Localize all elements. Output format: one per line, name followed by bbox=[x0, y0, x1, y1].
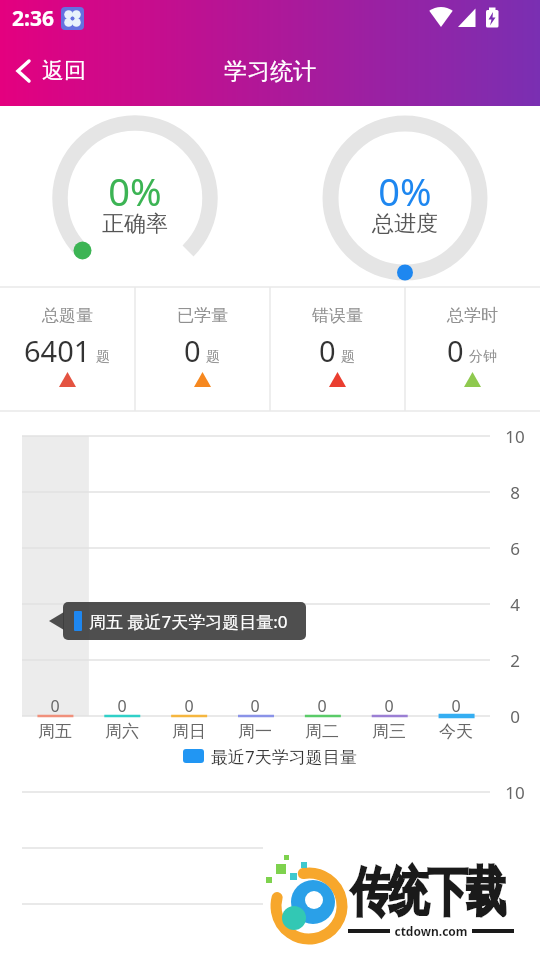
button[interactable]: 0 bbox=[135, 330, 269, 370]
staticText: 8 bbox=[510, 481, 520, 504]
staticText: 10 bbox=[505, 425, 525, 448]
staticText: 总进度 bbox=[372, 210, 438, 238]
staticText: 周五 最近7天学习题目量:0 bbox=[89, 610, 288, 633]
staticText: 0 bbox=[250, 695, 260, 717]
staticText: 周五 bbox=[38, 721, 72, 742]
staticText: 0% bbox=[108, 165, 162, 211]
staticText: 题 bbox=[341, 348, 355, 366]
staticText: ctdown.com bbox=[394, 923, 468, 939]
staticText: 0 bbox=[50, 695, 60, 717]
staticText: 6401 bbox=[24, 331, 91, 370]
staticText: 正确率 bbox=[102, 210, 168, 238]
staticText: 0 bbox=[447, 331, 464, 370]
staticText: 0 bbox=[317, 695, 327, 717]
button[interactable] bbox=[180, 742, 365, 770]
staticText: 学习统计 bbox=[224, 57, 316, 86]
staticText: 总题量 bbox=[42, 305, 93, 326]
staticText: 返回 bbox=[42, 57, 86, 85]
button[interactable]: 返回 bbox=[8, 50, 108, 92]
staticText: 周日 bbox=[172, 721, 206, 742]
button[interactable]: 0 bbox=[405, 330, 539, 370]
staticText: 题 bbox=[206, 348, 220, 366]
staticText: 0 bbox=[184, 695, 194, 717]
button[interactable]: 6401 bbox=[0, 330, 134, 370]
staticText: 周二 bbox=[305, 721, 339, 742]
staticText: 最近7天学习题目量 bbox=[211, 745, 357, 768]
staticText: 2:36 bbox=[12, 4, 54, 33]
staticText: 0 bbox=[384, 695, 394, 717]
staticText: 0 bbox=[117, 695, 127, 717]
staticText: 0 bbox=[510, 705, 520, 728]
staticText: 总学时 bbox=[447, 305, 498, 326]
staticText: 6 bbox=[510, 537, 520, 560]
staticText: 周一 bbox=[238, 721, 272, 742]
staticText: 周六 bbox=[105, 721, 139, 742]
staticText: 0% bbox=[378, 165, 432, 211]
staticText: 今天 bbox=[439, 721, 473, 742]
staticText: 传统下载 bbox=[351, 859, 505, 925]
staticText: 分钟 bbox=[469, 348, 497, 366]
staticText: 4 bbox=[510, 593, 520, 616]
staticText: 题 bbox=[96, 348, 110, 366]
staticText: 2 bbox=[510, 649, 520, 672]
staticText: 0 bbox=[184, 331, 201, 370]
staticText: 0 bbox=[451, 695, 461, 717]
button[interactable]: 0 bbox=[270, 330, 404, 370]
staticText: 错误量 bbox=[312, 305, 363, 326]
staticText: 周三 bbox=[372, 721, 406, 742]
staticText: 0 bbox=[319, 331, 336, 370]
staticText: 已学量 bbox=[177, 305, 228, 326]
staticText: 10 bbox=[505, 781, 525, 804]
